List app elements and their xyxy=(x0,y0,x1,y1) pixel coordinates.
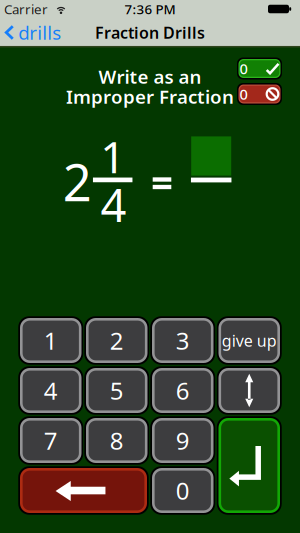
staticText: drills xyxy=(18,20,61,45)
staticText: 9 xyxy=(176,425,190,456)
staticText: Write as an xyxy=(98,64,201,89)
button[interactable]: Delete xyxy=(18,466,149,515)
button[interactable]: 4 xyxy=(18,366,83,415)
button[interactable]: 8 xyxy=(84,416,149,465)
staticText: 8 xyxy=(110,425,124,456)
staticText: 0 xyxy=(239,84,247,104)
button[interactable]: 7 xyxy=(18,416,83,465)
button[interactable]: Enter answer xyxy=(217,416,282,515)
staticText: 4 xyxy=(100,174,126,234)
staticText: Fraction Drills xyxy=(95,22,205,43)
staticText: 6 xyxy=(176,375,190,406)
button[interactable]: 5 xyxy=(84,366,149,415)
button[interactable]: give up xyxy=(217,316,282,365)
staticText: 0 xyxy=(239,59,247,78)
staticText: 7:36 PM xyxy=(124,0,175,18)
staticText: 1 xyxy=(44,325,58,356)
button[interactable]: Back to drills xyxy=(5,20,61,45)
button[interactable]: 1 xyxy=(18,316,83,365)
staticText: 0 xyxy=(176,475,190,506)
staticText: 4 xyxy=(44,375,58,406)
staticText: 2 xyxy=(110,325,124,356)
button[interactable]: Move between numerator and denominator xyxy=(217,366,282,415)
button[interactable]: 2 xyxy=(84,316,149,365)
staticText: 5 xyxy=(110,375,124,406)
staticText: 7 xyxy=(44,425,58,456)
staticText: give up xyxy=(222,330,277,351)
staticText: Carrier xyxy=(4,0,48,18)
button[interactable]: 6 xyxy=(150,366,215,415)
staticText: Improper Fraction xyxy=(66,84,234,109)
button[interactable]: 0 xyxy=(150,466,215,515)
button[interactable]: 3 xyxy=(150,316,215,365)
button[interactable]: 9 xyxy=(150,416,215,465)
staticText: 1 xyxy=(100,127,125,185)
staticText: 2 xyxy=(63,148,92,215)
staticText: 3 xyxy=(176,325,190,356)
